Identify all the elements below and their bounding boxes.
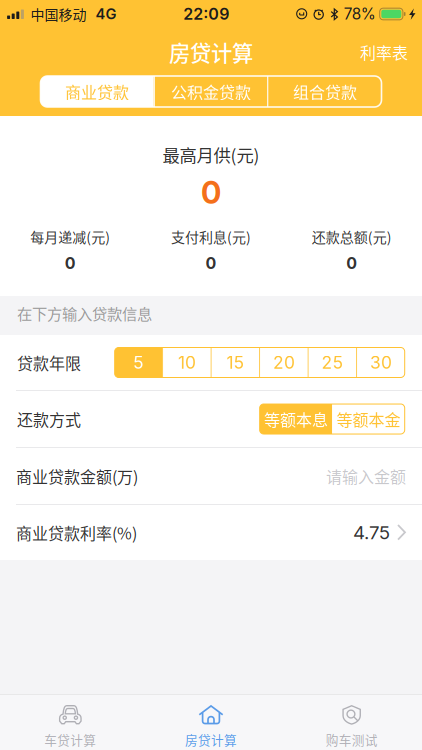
staticText: 25 [321,352,343,373]
staticText: 商业贷款利率(%) [16,521,137,544]
staticText: 购车测试 [326,730,378,749]
staticText: 20 [273,352,295,373]
staticText: 利率表 [360,40,408,64]
staticText: 房贷计算 [169,37,253,67]
button[interactable]: 公积金贷款 [155,76,267,107]
staticText: 公积金贷款 [171,80,251,103]
staticText: 中国移动 [30,4,86,24]
button[interactable]: 购车测试 [281,694,422,750]
staticText: 在下方输入贷款信息 [17,302,152,324]
staticText: 22:09 [183,4,229,24]
button[interactable]: 10 [163,347,211,377]
staticText: 请输入金额 [326,464,406,488]
button[interactable]: 组合贷款 [268,76,381,107]
button[interactable]: 等额本金 [332,404,405,434]
staticText: 组合贷款 [293,80,357,103]
staticText: 等额本息 [264,407,328,431]
button[interactable]: 商业贷款利率(%) [0,505,422,560]
staticText: 5 [133,352,144,373]
staticText: 最高月供(元) [162,142,259,167]
staticText: 支付利息(元) [171,226,251,246]
button[interactable]: 商业贷款 [40,76,154,107]
staticText: 0 [346,253,357,273]
staticText: 0 [201,174,221,211]
staticText: 商业贷款金额(万) [16,464,138,488]
staticText: 10 [178,352,196,373]
staticText: 4G [95,5,116,23]
staticText: 等额本金 [336,407,400,431]
button[interactable]: 车贷计算 [0,694,141,750]
button[interactable]: 利率表 [346,31,422,73]
staticText: 还款方式 [17,407,81,431]
button[interactable]: 25 [309,347,356,377]
staticText: 房贷计算 [185,730,237,749]
button[interactable]: 房贷计算 [141,694,281,750]
staticText: 0 [205,253,216,273]
staticText: 商业贷款 [65,80,129,103]
staticText: 每月递减(元) [30,226,110,246]
staticText: 78% [344,5,376,23]
button[interactable]: 商业贷款金额(万) [0,448,422,504]
staticText: 还款总额(元) [312,226,392,246]
button[interactable]: 15 [212,347,259,377]
staticText: 贷款年限 [17,351,81,374]
staticText: 30 [370,352,392,373]
staticText: 0 [65,253,76,273]
staticText: 4.75 [353,521,390,544]
staticText: 15 [226,352,244,373]
button[interactable]: 20 [260,347,308,377]
button[interactable]: 30 [357,347,405,377]
button[interactable]: 5 [115,347,162,377]
button[interactable]: 等额本息 [260,404,332,434]
staticText: 车贷计算 [44,730,96,749]
